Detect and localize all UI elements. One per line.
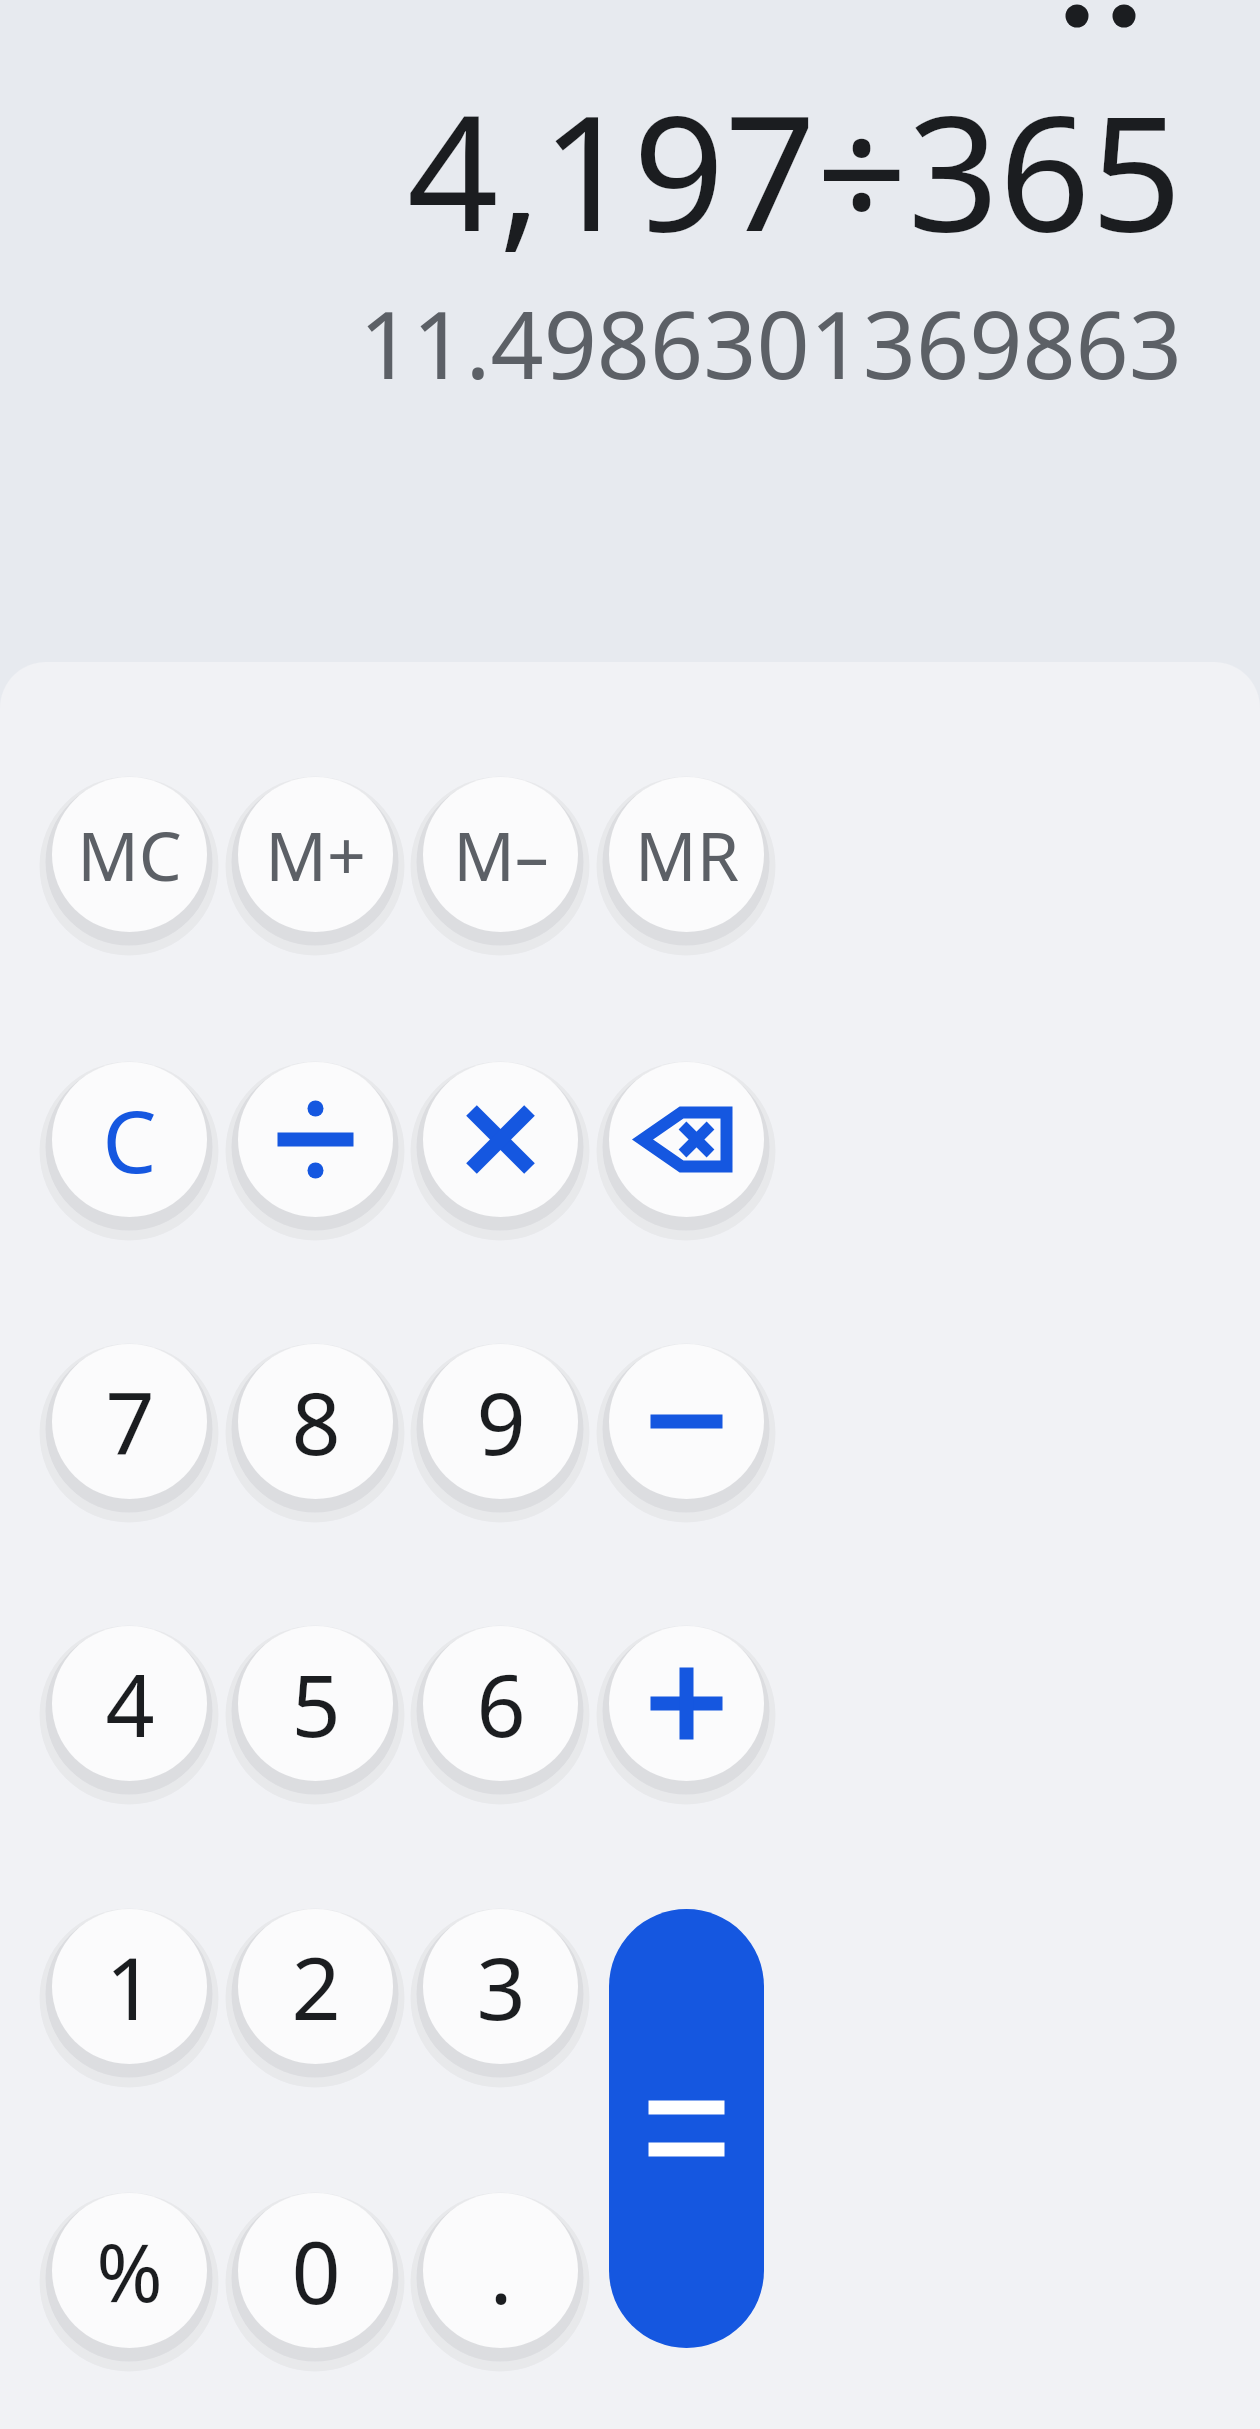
staticText: 8 — [291, 1363, 341, 1480]
staticText: 11.4986301369863 — [0, 280, 1182, 407]
button[interactable]: 6 — [423, 1626, 578, 1781]
staticText: C — [102, 1081, 157, 1198]
button[interactable]: 1 — [52, 1909, 207, 2064]
staticText: 5 — [291, 1645, 341, 1762]
button[interactable]: C — [52, 1062, 207, 1217]
button[interactable]: Minus — [609, 1344, 764, 1499]
staticText: 4 — [105, 1645, 155, 1762]
staticText: 1 — [105, 1928, 155, 2045]
button[interactable]: MR — [609, 777, 764, 932]
staticText: 6 — [476, 1645, 526, 1762]
button[interactable]: M– — [423, 777, 578, 932]
button[interactable]: . — [423, 2193, 578, 2348]
button[interactable]: Backspace — [609, 1062, 764, 1217]
staticText: . — [489, 2212, 513, 2329]
button[interactable]: 7 — [52, 1344, 207, 1499]
staticText: 0 — [291, 2212, 341, 2329]
staticText: 3 — [476, 1928, 526, 2045]
staticText: MC — [77, 808, 182, 901]
button[interactable]: 3 — [423, 1909, 578, 2064]
button[interactable]: % — [52, 2193, 207, 2348]
button[interactable]: 8 — [238, 1344, 393, 1499]
staticText: % — [96, 2216, 163, 2325]
staticText: 7 — [105, 1363, 155, 1480]
button[interactable]: Equals — [609, 1909, 764, 2348]
button[interactable]: Multiply — [423, 1062, 578, 1217]
button[interactable]: More options — [1055, 0, 1185, 60]
staticText: MR — [635, 808, 739, 901]
staticText: 9 — [476, 1363, 526, 1480]
button[interactable]: 5 — [238, 1626, 393, 1781]
button[interactable]: 4 — [52, 1626, 207, 1781]
button[interactable]: 9 — [423, 1344, 578, 1499]
button[interactable]: Plus — [609, 1626, 764, 1781]
staticText: 4,197÷365 — [0, 60, 1182, 278]
button[interactable]: 0 — [238, 2193, 393, 2348]
staticText: M– — [453, 808, 549, 901]
staticText: M+ — [265, 808, 366, 901]
button[interactable]: 2 — [238, 1909, 393, 2064]
button[interactable]: MC — [52, 777, 207, 932]
button[interactable]: M+ — [238, 777, 393, 932]
button[interactable]: Divide — [238, 1062, 393, 1217]
staticText: 2 — [291, 1928, 341, 2045]
